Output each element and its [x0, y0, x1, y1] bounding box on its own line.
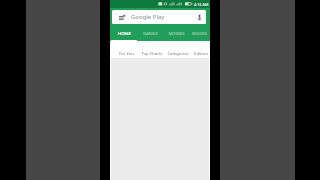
staticText: Google Play	[131, 13, 165, 21]
staticText: HOME	[118, 30, 131, 36]
button[interactable]: MOVIES	[163, 27, 189, 41]
other: Voice search	[197, 14, 202, 21]
button[interactable]: Categories	[165, 41, 191, 58]
staticText: Top Charts	[141, 51, 163, 57]
staticText: Categories	[167, 51, 189, 57]
staticText: Editors	[194, 51, 208, 57]
other: Open navigation menu	[119, 14, 125, 21]
staticText: MOVIES	[168, 30, 185, 36]
staticText: BOOKS	[192, 30, 207, 36]
staticText: 4:13 AM	[194, 2, 209, 7]
button[interactable]: Top Charts	[139, 41, 165, 58]
button[interactable]: HOME	[111, 27, 137, 41]
button[interactable]: GAMES	[137, 27, 163, 41]
staticText: GAMES	[143, 30, 158, 36]
button[interactable]: BOOKS	[189, 27, 210, 41]
button[interactable]: Open navigation menu	[112, 10, 206, 24]
button[interactable]: Editors	[191, 41, 210, 58]
staticText: For You	[119, 51, 134, 57]
button[interactable]: For You	[113, 41, 139, 58]
